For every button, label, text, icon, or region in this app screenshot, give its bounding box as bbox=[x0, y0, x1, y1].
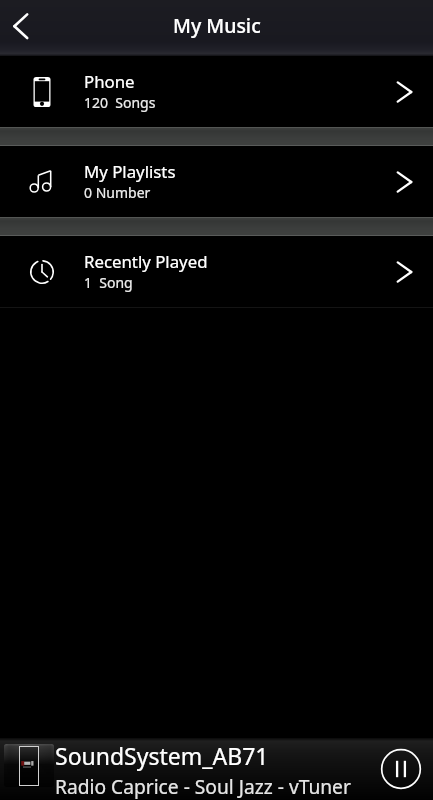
staticText: My Playlists bbox=[84, 160, 176, 183]
staticText: 1 Song bbox=[84, 273, 133, 292]
button[interactable]: Recently Played bbox=[0, 236, 433, 307]
staticText: My Music bbox=[173, 12, 261, 39]
staticText: 0 Number bbox=[84, 183, 151, 202]
staticText: Recently Played bbox=[84, 250, 208, 273]
staticText: Phone bbox=[84, 70, 135, 93]
button[interactable]: My Playlists bbox=[0, 146, 433, 217]
staticText: SoundSystem_AB71 bbox=[55, 740, 269, 771]
button[interactable]: Pause bbox=[369, 738, 433, 800]
button[interactable]: Back bbox=[0, 0, 46, 56]
button[interactable]: Phone bbox=[0, 56, 433, 127]
button[interactable]: SoundSystem_AB71 bbox=[0, 738, 369, 800]
staticText: 120 Songs bbox=[84, 93, 156, 112]
staticText: Radio Caprice - Soul Jazz - vTuner bbox=[55, 773, 351, 799]
